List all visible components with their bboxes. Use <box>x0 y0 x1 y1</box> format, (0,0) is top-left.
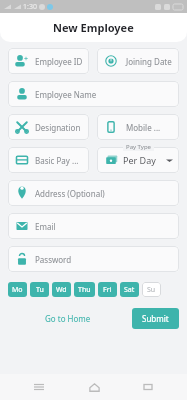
button[interactable]: Submit <box>132 308 179 329</box>
staticText: Password <box>35 254 72 265</box>
staticText: Wd <box>56 285 67 295</box>
staticText: Pay Type <box>126 143 151 151</box>
button[interactable]: Basic Pay ... <box>8 147 89 173</box>
button[interactable]: Go to Home <box>39 309 97 328</box>
staticText: Go to Home <box>45 313 91 324</box>
staticText: Email <box>35 221 56 232</box>
button[interactable]: Fri <box>98 282 117 297</box>
staticText: Sat <box>124 285 135 295</box>
staticText: Su <box>147 285 156 295</box>
button[interactable]: Back <box>133 374 163 400</box>
staticText: Employee ID <box>35 56 83 67</box>
button[interactable]: Password <box>8 246 179 272</box>
button[interactable]: Home <box>79 374 109 400</box>
staticText: Tu <box>36 285 44 295</box>
button[interactable]: Su <box>142 282 161 297</box>
staticText: Basic Pay ... <box>35 155 79 166</box>
staticText: Mobile ... <box>126 122 161 133</box>
staticText: Thu <box>78 285 91 295</box>
button[interactable]: Address (Optional) <box>8 180 179 206</box>
staticText: Address (Optional) <box>35 188 105 199</box>
button[interactable]: Email <box>8 213 179 239</box>
button[interactable]: Mobile ... <box>97 114 179 140</box>
staticText: New Employee <box>53 20 134 35</box>
button[interactable]: Thu <box>74 282 95 297</box>
staticText: 1:30 <box>23 2 37 12</box>
staticText: Designation <box>35 122 81 133</box>
button[interactable]: Per Day <box>97 147 179 173</box>
button[interactable]: Joining Date <box>97 48 179 74</box>
button[interactable]: Mo <box>8 282 27 297</box>
staticText: Per Day <box>123 154 156 166</box>
staticText: Fri <box>103 285 112 295</box>
button[interactable]: Employee Name <box>8 81 179 107</box>
button[interactable]: Recent apps <box>24 374 54 400</box>
staticText: Employee Name <box>35 89 97 100</box>
staticText: Mo <box>12 285 23 295</box>
button[interactable]: Designation <box>8 114 89 140</box>
staticText: Submit <box>142 313 169 324</box>
staticText: Joining Date <box>126 56 172 67</box>
button[interactable]: Wd <box>52 282 71 297</box>
button[interactable]: Sat <box>120 282 139 297</box>
button[interactable]: Tu <box>30 282 49 297</box>
button[interactable]: Employee ID <box>8 48 89 74</box>
